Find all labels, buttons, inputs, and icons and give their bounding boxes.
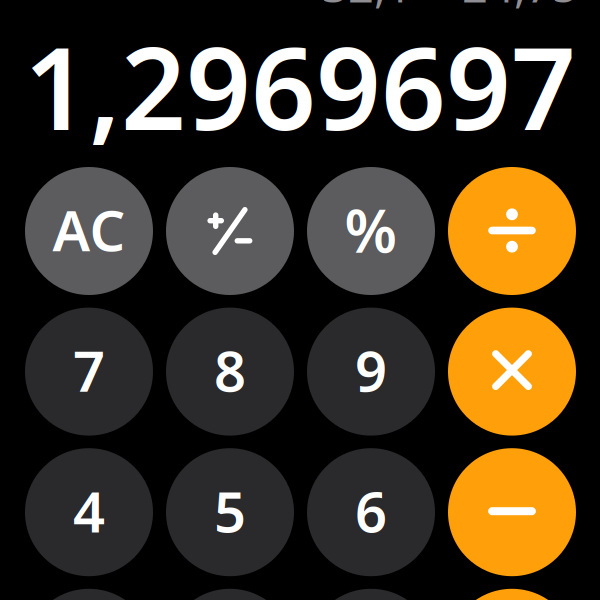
button[interactable]: AC [25,167,153,295]
button[interactable]: Plus minus [166,167,294,295]
button[interactable]: 1 [25,589,153,600]
button[interactable]: % [307,167,435,295]
button[interactable]: Divide [448,167,576,295]
staticText: 4 [73,473,105,548]
button[interactable]: 9 [307,308,435,436]
staticText: 7 [73,333,105,407]
button[interactable]: 8 [166,308,294,436]
staticText: 9 [355,333,387,407]
button[interactable]: 2 [166,589,294,600]
button[interactable]: 4 [25,448,153,576]
staticText: 32,1 ÷ 24,75 [322,0,578,15]
button[interactable]: 6 [307,448,435,576]
staticText: 8 [214,333,246,407]
staticText: 1,2969697 [24,11,576,161]
staticText: % [344,190,397,269]
button[interactable]: 3 [307,589,435,600]
staticText: AC [52,192,125,267]
button[interactable]: Multiply [448,308,576,436]
staticText: 6 [355,473,387,548]
button[interactable]: Add [448,589,576,600]
staticText: 5 [214,473,246,548]
button[interactable]: 7 [25,308,153,436]
button[interactable]: Subtract [448,448,576,576]
button[interactable]: 5 [166,448,294,576]
